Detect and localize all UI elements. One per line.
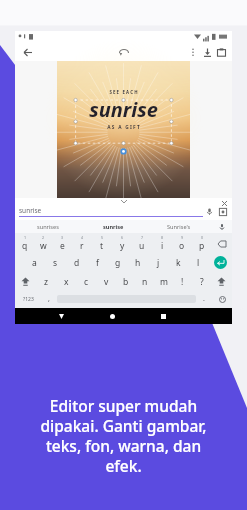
button[interactable]: d [66, 253, 87, 272]
staticText: . [203, 294, 205, 304]
staticText: e [60, 240, 65, 252]
button[interactable]: 0 [192, 234, 212, 253]
staticText: s [53, 257, 58, 269]
staticText: sunrise [103, 223, 124, 231]
staticText: c [84, 276, 89, 288]
button[interactable]: Save [214, 45, 228, 59]
button[interactable]: g [108, 253, 128, 272]
staticText: A S A G I F T [107, 124, 140, 131]
button[interactable]: j [148, 253, 168, 272]
button[interactable]: m [154, 272, 173, 291]
staticText: t [100, 240, 104, 252]
button[interactable]: 8 [152, 234, 172, 253]
button[interactable]: Recents [155, 308, 171, 324]
staticText: v [104, 276, 109, 288]
button[interactable]: Close [219, 198, 229, 208]
staticText: ! [181, 276, 184, 288]
staticText: l [197, 257, 200, 269]
button[interactable]: Download [200, 45, 214, 59]
button[interactable]: n [135, 272, 154, 291]
staticText: p [199, 240, 205, 252]
staticText: 9 [181, 235, 184, 240]
button[interactable]: Microphone [212, 220, 232, 233]
button[interactable]: Back [19, 44, 35, 60]
staticText: 2 [42, 235, 45, 240]
button[interactable]: ? [192, 272, 211, 291]
button[interactable]: a [24, 253, 45, 272]
button[interactable]: 1 [15, 234, 34, 253]
staticText: w [40, 240, 47, 252]
staticText: m [160, 276, 168, 288]
staticText: b [123, 276, 129, 288]
button[interactable]: sunrise [19, 206, 203, 217]
button[interactable]: Image search [216, 205, 229, 218]
staticText: u [139, 240, 145, 252]
staticText: h [135, 257, 141, 269]
button[interactable]: l [188, 253, 208, 272]
staticText: 0 [201, 235, 204, 240]
staticText: ?123 [23, 296, 34, 303]
staticText: Sunrise's [167, 223, 191, 231]
button[interactable]: 7 [132, 234, 152, 253]
button[interactable]: Enter [208, 253, 232, 272]
staticText: i [161, 240, 164, 252]
staticText: 7 [141, 235, 144, 240]
staticText: j [157, 257, 160, 269]
button[interactable]: Home [104, 308, 120, 324]
staticText: a [32, 257, 37, 269]
button[interactable]: Backspace [212, 234, 232, 253]
staticText: sunrises [37, 223, 59, 231]
button[interactable]: k [168, 253, 188, 272]
staticText: q [22, 240, 28, 252]
staticText: n [142, 276, 148, 288]
staticText: r [80, 240, 84, 252]
staticText: sunrise [19, 206, 42, 215]
button[interactable]: Shift [211, 272, 232, 291]
staticText: 5 [101, 235, 104, 240]
staticText: 3 [61, 235, 64, 240]
staticText: S E E E A C H [109, 89, 138, 95]
button[interactable]: z [36, 272, 56, 291]
staticText: 1 [24, 235, 27, 240]
button[interactable]: c [76, 272, 96, 291]
staticText: k [176, 257, 181, 269]
staticText: x [64, 276, 69, 288]
button[interactable]: b [116, 272, 135, 291]
button[interactable]: s [45, 253, 66, 272]
staticText: ? [200, 276, 204, 288]
button[interactable]: More options [186, 45, 200, 59]
button[interactable]: h [128, 253, 148, 272]
button[interactable]: , [41, 291, 57, 307]
button[interactable]: ?123 [15, 291, 41, 307]
staticText: 8 [161, 235, 164, 240]
button[interactable]: Voice search [203, 205, 216, 218]
button[interactable]: sunrise [80, 220, 146, 233]
button[interactable]: 9 [172, 234, 192, 253]
button[interactable]: 4 [72, 234, 92, 253]
button[interactable]: 6 [112, 234, 132, 253]
button[interactable]: 3 [53, 234, 72, 253]
button[interactable]: v [96, 272, 116, 291]
button[interactable]: Sunrise's [146, 220, 212, 233]
button[interactable]: x [56, 272, 76, 291]
button[interactable]: ! [173, 272, 192, 291]
button[interactable]: S E E E A C H [57, 61, 190, 198]
staticText: g [115, 257, 121, 269]
button[interactable]: 2 [34, 234, 53, 253]
staticText: o [179, 240, 185, 252]
staticText: d [74, 257, 80, 269]
button[interactable]: Back [53, 308, 69, 324]
button[interactable]: . [196, 291, 212, 307]
staticText: sunrise [89, 96, 158, 123]
staticText: z [44, 276, 48, 288]
staticText: f [96, 257, 99, 269]
button[interactable]: 5 [92, 234, 112, 253]
button[interactable]: Shift [15, 272, 36, 291]
button[interactable]: sunrises [15, 220, 80, 233]
button[interactable]: f [87, 253, 108, 272]
staticText: 6 [121, 235, 124, 240]
button[interactable]: Emoji [212, 291, 232, 307]
button[interactable]: Undo [116, 44, 132, 60]
staticText: Editor super mudah dipakai. Ganti gambar… [0, 395, 247, 476]
